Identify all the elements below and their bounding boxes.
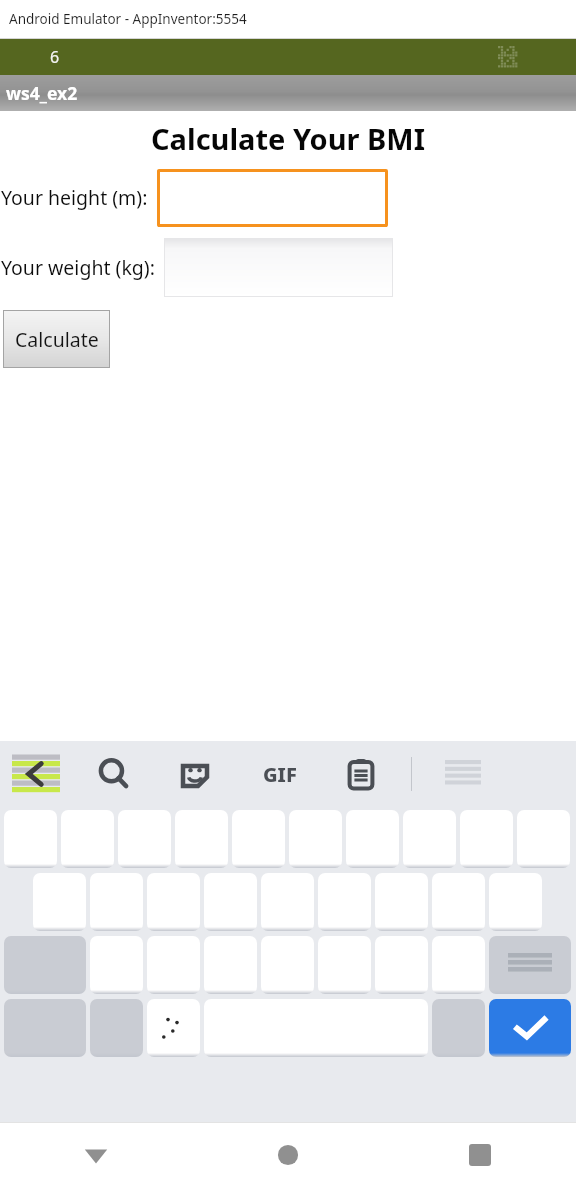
button[interactable]: GIF xyxy=(254,752,306,796)
button[interactable]: Emoji xyxy=(147,999,200,1057)
button[interactable]: Key xyxy=(375,936,428,994)
button[interactable]: Key xyxy=(90,936,143,994)
button[interactable] xyxy=(164,238,393,297)
button[interactable]: Key xyxy=(318,936,371,994)
button[interactable]: Key xyxy=(204,873,257,931)
button[interactable]: Key xyxy=(118,810,171,868)
button[interactable]: Key xyxy=(432,873,485,931)
staticText: ws4_ex2 xyxy=(6,81,78,105)
button[interactable]: Key xyxy=(147,936,200,994)
button[interactable]: Clipboard xyxy=(339,752,383,796)
button[interactable]: Key xyxy=(261,936,314,994)
button[interactable]: Key xyxy=(318,873,371,931)
button[interactable]: Calculate xyxy=(3,310,110,368)
staticText: Your height (m): xyxy=(1,184,148,211)
button[interactable]: Stickers xyxy=(173,752,217,796)
staticText: Calculate Your BMI xyxy=(151,119,425,158)
staticText: GIF xyxy=(263,761,297,788)
button[interactable]: Key xyxy=(489,873,542,931)
button[interactable]: Key xyxy=(204,936,257,994)
button[interactable]: Key xyxy=(375,873,428,931)
button[interactable]: Period xyxy=(432,999,485,1057)
button[interactable]: Key xyxy=(33,873,86,931)
button[interactable] xyxy=(157,169,388,227)
staticText: Your weight (kg): xyxy=(1,254,155,281)
button[interactable]: Key xyxy=(289,810,342,868)
button[interactable]: Key xyxy=(4,810,57,868)
button[interactable]: Enter xyxy=(489,999,571,1057)
button[interactable]: Search xyxy=(92,752,136,796)
button[interactable]: Key xyxy=(517,810,570,868)
staticText: Calculate xyxy=(15,326,99,353)
button[interactable]: Home xyxy=(192,1122,384,1188)
button[interactable]: Key xyxy=(232,810,285,868)
button[interactable]: Key xyxy=(61,810,114,868)
button[interactable]: Space xyxy=(204,999,428,1057)
button[interactable]: Key xyxy=(261,873,314,931)
button[interactable]: Key xyxy=(346,810,399,868)
button[interactable]: Back xyxy=(0,1122,192,1188)
staticText: Android Emulator - AppInventor:5554 xyxy=(9,10,247,28)
button[interactable]: Recent apps xyxy=(384,1122,576,1188)
staticText: 6 xyxy=(50,46,60,68)
button[interactable]: Google xyxy=(10,748,62,800)
button[interactable]: Key xyxy=(175,810,228,868)
button[interactable]: Key xyxy=(403,810,456,868)
button[interactable]: Backspace xyxy=(489,936,571,994)
other: Status icons xyxy=(498,46,518,68)
button[interactable]: Key xyxy=(432,936,485,994)
button[interactable]: Key xyxy=(90,873,143,931)
button[interactable]: Key xyxy=(460,810,513,868)
button[interactable]: Comma xyxy=(90,999,143,1057)
button[interactable]: Key xyxy=(147,873,200,931)
button[interactable]: More options xyxy=(445,757,481,791)
